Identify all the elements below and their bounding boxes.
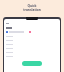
staticText: Quick translation xyxy=(23,4,41,11)
button[interactable] xyxy=(22,61,42,66)
